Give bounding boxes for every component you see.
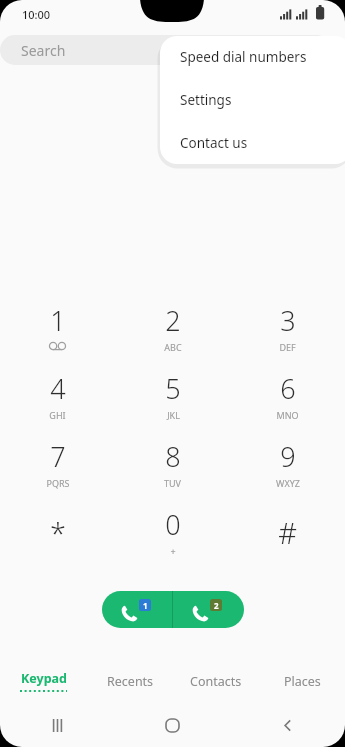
- button[interactable]: Settings: [160, 78, 345, 121]
- button[interactable]: Call with SIM 2: [173, 591, 244, 628]
- button[interactable]: Back: [230, 703, 345, 747]
- staticText: Keypad: [21, 670, 67, 687]
- staticText: GHI: [49, 409, 66, 421]
- staticText: *: [50, 513, 66, 552]
- button[interactable]: Places: [259, 659, 345, 703]
- button[interactable]: 1: [0, 293, 115, 361]
- staticText: 7: [50, 438, 66, 475]
- staticText: Settings: [180, 91, 232, 109]
- staticText: WXYZ: [276, 477, 300, 489]
- button[interactable]: 5: [115, 361, 230, 429]
- staticText: 1: [143, 600, 148, 611]
- staticText: TUV: [164, 477, 181, 489]
- staticText: 8: [165, 438, 181, 475]
- button[interactable]: Call with SIM 1: [102, 591, 172, 628]
- button[interactable]: Keypad: [0, 659, 87, 703]
- staticText: Recents: [107, 673, 154, 690]
- staticText: Search: [21, 41, 66, 60]
- button[interactable]: #: [230, 497, 345, 565]
- button[interactable]: Contact us: [160, 121, 345, 164]
- button[interactable]: Recents: [0, 703, 115, 747]
- staticText: #: [278, 513, 297, 552]
- staticText: 0: [165, 506, 181, 543]
- staticText: 6: [280, 370, 296, 407]
- staticText: 1: [50, 302, 66, 339]
- button[interactable]: 2: [115, 293, 230, 361]
- button[interactable]: 6: [230, 361, 345, 429]
- staticText: Places: [284, 673, 321, 690]
- staticText: 2: [214, 600, 219, 611]
- button[interactable]: 7: [0, 429, 115, 497]
- staticText: 4: [50, 370, 66, 407]
- staticText: PQRS: [46, 477, 70, 489]
- staticText: Contact us: [180, 134, 248, 152]
- staticText: JKL: [167, 409, 180, 421]
- button[interactable]: 3: [230, 293, 345, 361]
- button[interactable]: 0: [115, 497, 230, 565]
- button[interactable]: Contacts: [173, 659, 259, 703]
- staticText: 10:00: [22, 7, 51, 22]
- button[interactable]: 9: [230, 429, 345, 497]
- button[interactable]: *: [0, 497, 115, 565]
- button[interactable]: Recents: [87, 659, 173, 703]
- staticText: ABC: [164, 341, 182, 353]
- staticText: Contacts: [190, 673, 242, 690]
- staticText: Speed dial numbers: [180, 48, 307, 66]
- staticText: 9: [280, 438, 296, 475]
- staticText: +: [170, 545, 176, 557]
- button[interactable]: 4: [0, 361, 115, 429]
- staticText: DEF: [279, 341, 296, 353]
- staticText: 3: [280, 302, 296, 339]
- staticText: MNO: [276, 409, 299, 421]
- button[interactable]: Home: [115, 703, 230, 747]
- button[interactable]: 8: [115, 429, 230, 497]
- button[interactable]: Speed dial numbers: [160, 36, 345, 78]
- staticText: 2: [165, 302, 181, 339]
- button[interactable]: Search: [0, 35, 331, 65]
- staticText: 5: [165, 370, 181, 407]
